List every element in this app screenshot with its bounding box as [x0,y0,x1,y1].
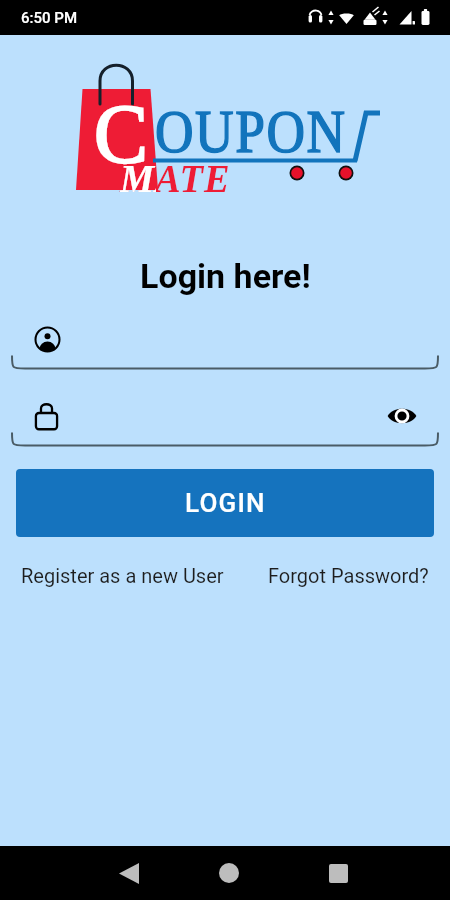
staticText: MATE [120,156,231,200]
staticText: Register as a new User [21,564,224,587]
button[interactable]: Show password [387,406,417,426]
button[interactable]: Register as a new User [21,564,224,587]
staticText: OUPON [155,98,347,166]
staticText: Login here! [140,256,311,296]
button[interactable]: Recent apps [314,849,362,897]
staticText: 6:50 PM [21,9,78,27]
button[interactable]: LOGIN [16,469,434,537]
staticText: MATE [120,156,156,198]
staticText: Forgot Password? [268,564,429,587]
button[interactable]: Home [205,849,253,897]
button[interactable]: Show password [0,385,450,447]
staticText: LOGIN [185,488,266,518]
button[interactable]: Back [105,849,153,897]
button[interactable] [0,308,450,370]
staticText: C [94,87,148,181]
staticText: C [94,87,148,181]
button[interactable]: Forgot Password? [268,564,429,587]
staticText: OUPON [155,98,347,166]
